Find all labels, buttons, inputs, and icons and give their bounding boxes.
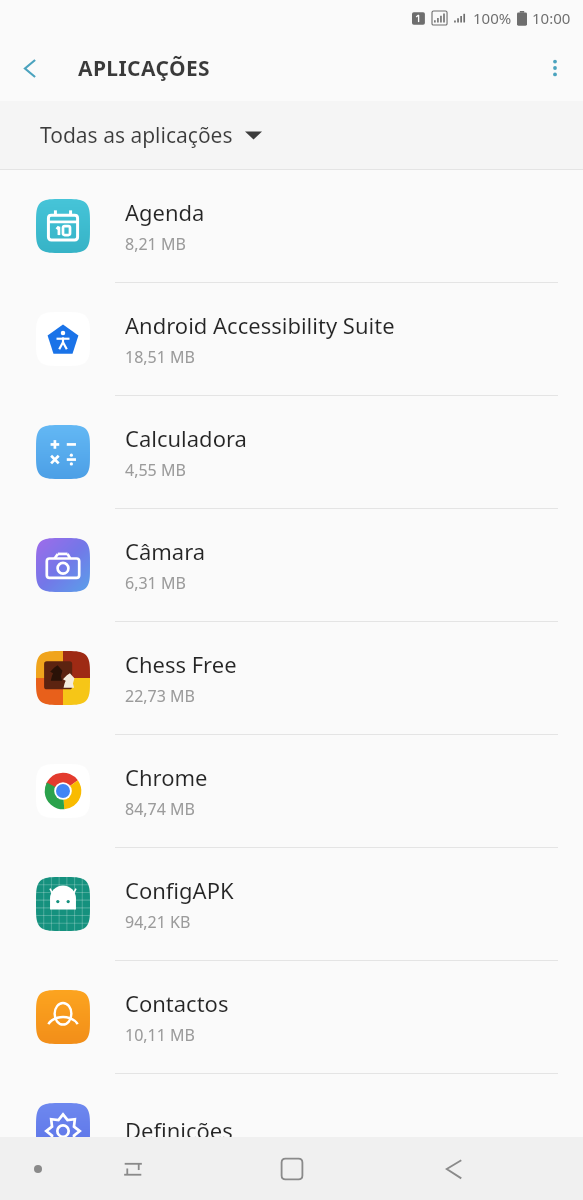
button[interactable]: Back <box>428 1143 480 1195</box>
staticText: Contactos <box>125 988 229 1018</box>
staticText: 10:00 <box>532 8 571 28</box>
staticText: Agenda <box>125 197 205 227</box>
staticText: 6,31 MB <box>125 572 186 594</box>
staticText: APLICAÇÕES <box>78 54 211 83</box>
staticText: 4,55 MB <box>125 459 186 481</box>
button[interactable]: Agenda <box>0 170 583 283</box>
staticText: Todas as aplicações <box>40 121 233 150</box>
staticText: 94,21 KB <box>125 911 191 933</box>
button[interactable]: More options <box>527 40 583 96</box>
button[interactable]: Back <box>0 38 60 98</box>
staticText: Calculadora <box>125 423 247 453</box>
staticText: Chrome <box>125 762 208 792</box>
button[interactable]: Chess Free <box>0 622 583 735</box>
staticText: Android Accessibility Suite <box>125 310 395 340</box>
button[interactable]: Chrome <box>0 735 583 848</box>
staticText: 22,73 MB <box>125 685 195 707</box>
staticText: 84,74 MB <box>125 798 195 820</box>
staticText: 18,51 MB <box>125 346 195 368</box>
staticText: 10,11 MB <box>125 1024 195 1046</box>
staticText: Definições <box>125 1115 233 1145</box>
button[interactable]: Câmara <box>0 509 583 622</box>
staticText: Chess Free <box>125 649 237 679</box>
staticText: 8,21 MB <box>125 233 186 255</box>
button[interactable]: Home <box>265 1142 319 1196</box>
button[interactable]: Indicator <box>14 1145 62 1193</box>
button[interactable]: Definições <box>0 1074 583 1186</box>
button[interactable]: Todas as aplicações <box>0 101 583 169</box>
button[interactable]: Android Accessibility Suite <box>0 283 583 396</box>
staticText: 100% <box>473 8 512 28</box>
button[interactable]: Calculadora <box>0 396 583 509</box>
button[interactable]: ConfigAPK <box>0 848 583 961</box>
staticText: Câmara <box>125 536 206 566</box>
staticText: ConfigAPK <box>125 875 234 905</box>
button[interactable]: Contactos <box>0 961 583 1074</box>
button[interactable]: Recent apps <box>107 1143 159 1195</box>
